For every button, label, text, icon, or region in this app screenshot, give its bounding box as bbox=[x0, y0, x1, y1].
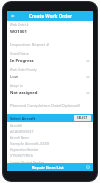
button[interactable]: Back bbox=[10, 13, 16, 19]
button[interactable]: Overall Status bbox=[7, 50, 93, 66]
staticText: Registration Number bbox=[10, 148, 39, 152]
staticText: In Progress bbox=[10, 58, 86, 64]
button[interactable]: Assign to bbox=[7, 82, 93, 98]
staticText: Work Order # bbox=[10, 23, 29, 27]
other: Expand bbox=[86, 165, 90, 169]
staticText: Aircraft# bbox=[10, 124, 22, 128]
staticText: Assign to bbox=[10, 84, 23, 88]
staticText: ACA0890337 bbox=[10, 129, 34, 134]
staticText: Inspection Report # bbox=[10, 42, 49, 48]
button[interactable]: Work Order # bbox=[7, 21, 93, 37]
staticText: Low bbox=[10, 74, 86, 80]
staticText: WO1001 bbox=[10, 29, 90, 35]
staticText: Work Order Priority bbox=[10, 68, 37, 72]
staticText: Repair Item List bbox=[32, 165, 64, 170]
button[interactable]: Work Order Priority bbox=[7, 66, 93, 82]
staticText: Select Aircraft bbox=[10, 116, 74, 121]
staticText: Create Work Order bbox=[29, 13, 72, 19]
staticText: VT60877856 bbox=[10, 153, 33, 158]
staticText: Aircraft Name bbox=[10, 136, 29, 140]
staticText: Current Nautical Reading bbox=[10, 161, 45, 163]
staticText: Overall Status bbox=[10, 52, 29, 56]
staticText: Not assigned bbox=[10, 90, 86, 96]
staticText: Planned Completion Date(Optional) bbox=[10, 103, 80, 109]
button[interactable]: Planned Completion Date(Optional) bbox=[7, 98, 93, 111]
staticText: SELECT bbox=[77, 116, 88, 120]
staticText: Sample Aircraft-3330 bbox=[10, 141, 50, 146]
button[interactable]: Repair Item List bbox=[7, 163, 93, 171]
button[interactable]: SELECT bbox=[74, 115, 91, 121]
